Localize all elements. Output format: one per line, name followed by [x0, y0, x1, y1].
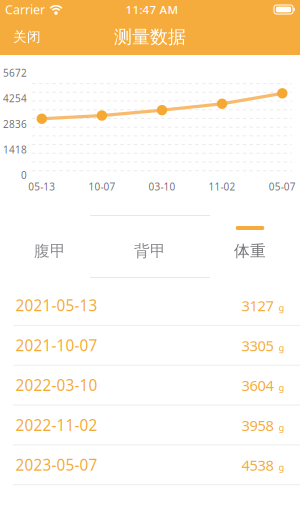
staticText: 体重 — [234, 241, 266, 261]
staticText: 背甲 — [134, 241, 166, 261]
staticText: 0 — [21, 168, 27, 182]
staticText: 05-07 — [269, 180, 296, 193]
staticText: 4538 — [241, 455, 273, 475]
staticText: 11:47 AM — [125, 2, 178, 17]
button[interactable]: 体重 — [200, 215, 300, 278]
staticText: 3604 — [241, 375, 273, 395]
staticText: 2022-11-02 — [15, 414, 97, 435]
staticText: 11-02 — [209, 180, 236, 193]
staticText: 2022-03-10 — [15, 375, 97, 396]
button[interactable]: 2021-05-13 — [0, 286, 300, 326]
staticText: 3958 — [241, 415, 273, 435]
button[interactable]: 2022-03-10 — [0, 366, 300, 406]
staticText: 1418 — [3, 143, 27, 156]
staticText: 2021-05-13 — [15, 295, 97, 316]
button[interactable]: 2023-05-07 — [0, 445, 300, 485]
staticText: 03-10 — [148, 180, 175, 193]
button[interactable]: 腹甲 — [0, 215, 100, 278]
staticText: g — [278, 421, 284, 434]
staticText: 10-07 — [88, 180, 115, 193]
staticText: 2023-05-07 — [15, 454, 97, 475]
staticText: Carrier — [5, 1, 45, 18]
staticText: 4254 — [3, 92, 27, 105]
staticText: 测量数据 — [114, 26, 186, 48]
staticText: g — [278, 341, 284, 354]
staticText: g — [278, 301, 284, 314]
staticText: 腹甲 — [34, 241, 66, 261]
staticText: 05-13 — [28, 180, 55, 193]
staticText: g — [278, 461, 284, 473]
button[interactable]: 关闭 — [0, 20, 54, 53]
button[interactable]: 2021-10-07 — [0, 326, 300, 366]
button[interactable]: 背甲 — [100, 215, 200, 278]
staticText: g — [278, 381, 284, 394]
staticText: 2021-10-07 — [15, 335, 97, 356]
staticText: 5672 — [3, 66, 27, 80]
staticText: 3305 — [241, 335, 273, 355]
staticText: 3127 — [241, 296, 273, 316]
staticText: 关闭 — [13, 28, 41, 45]
staticText: 2836 — [3, 117, 27, 131]
button[interactable]: 2022-11-02 — [0, 406, 300, 445]
